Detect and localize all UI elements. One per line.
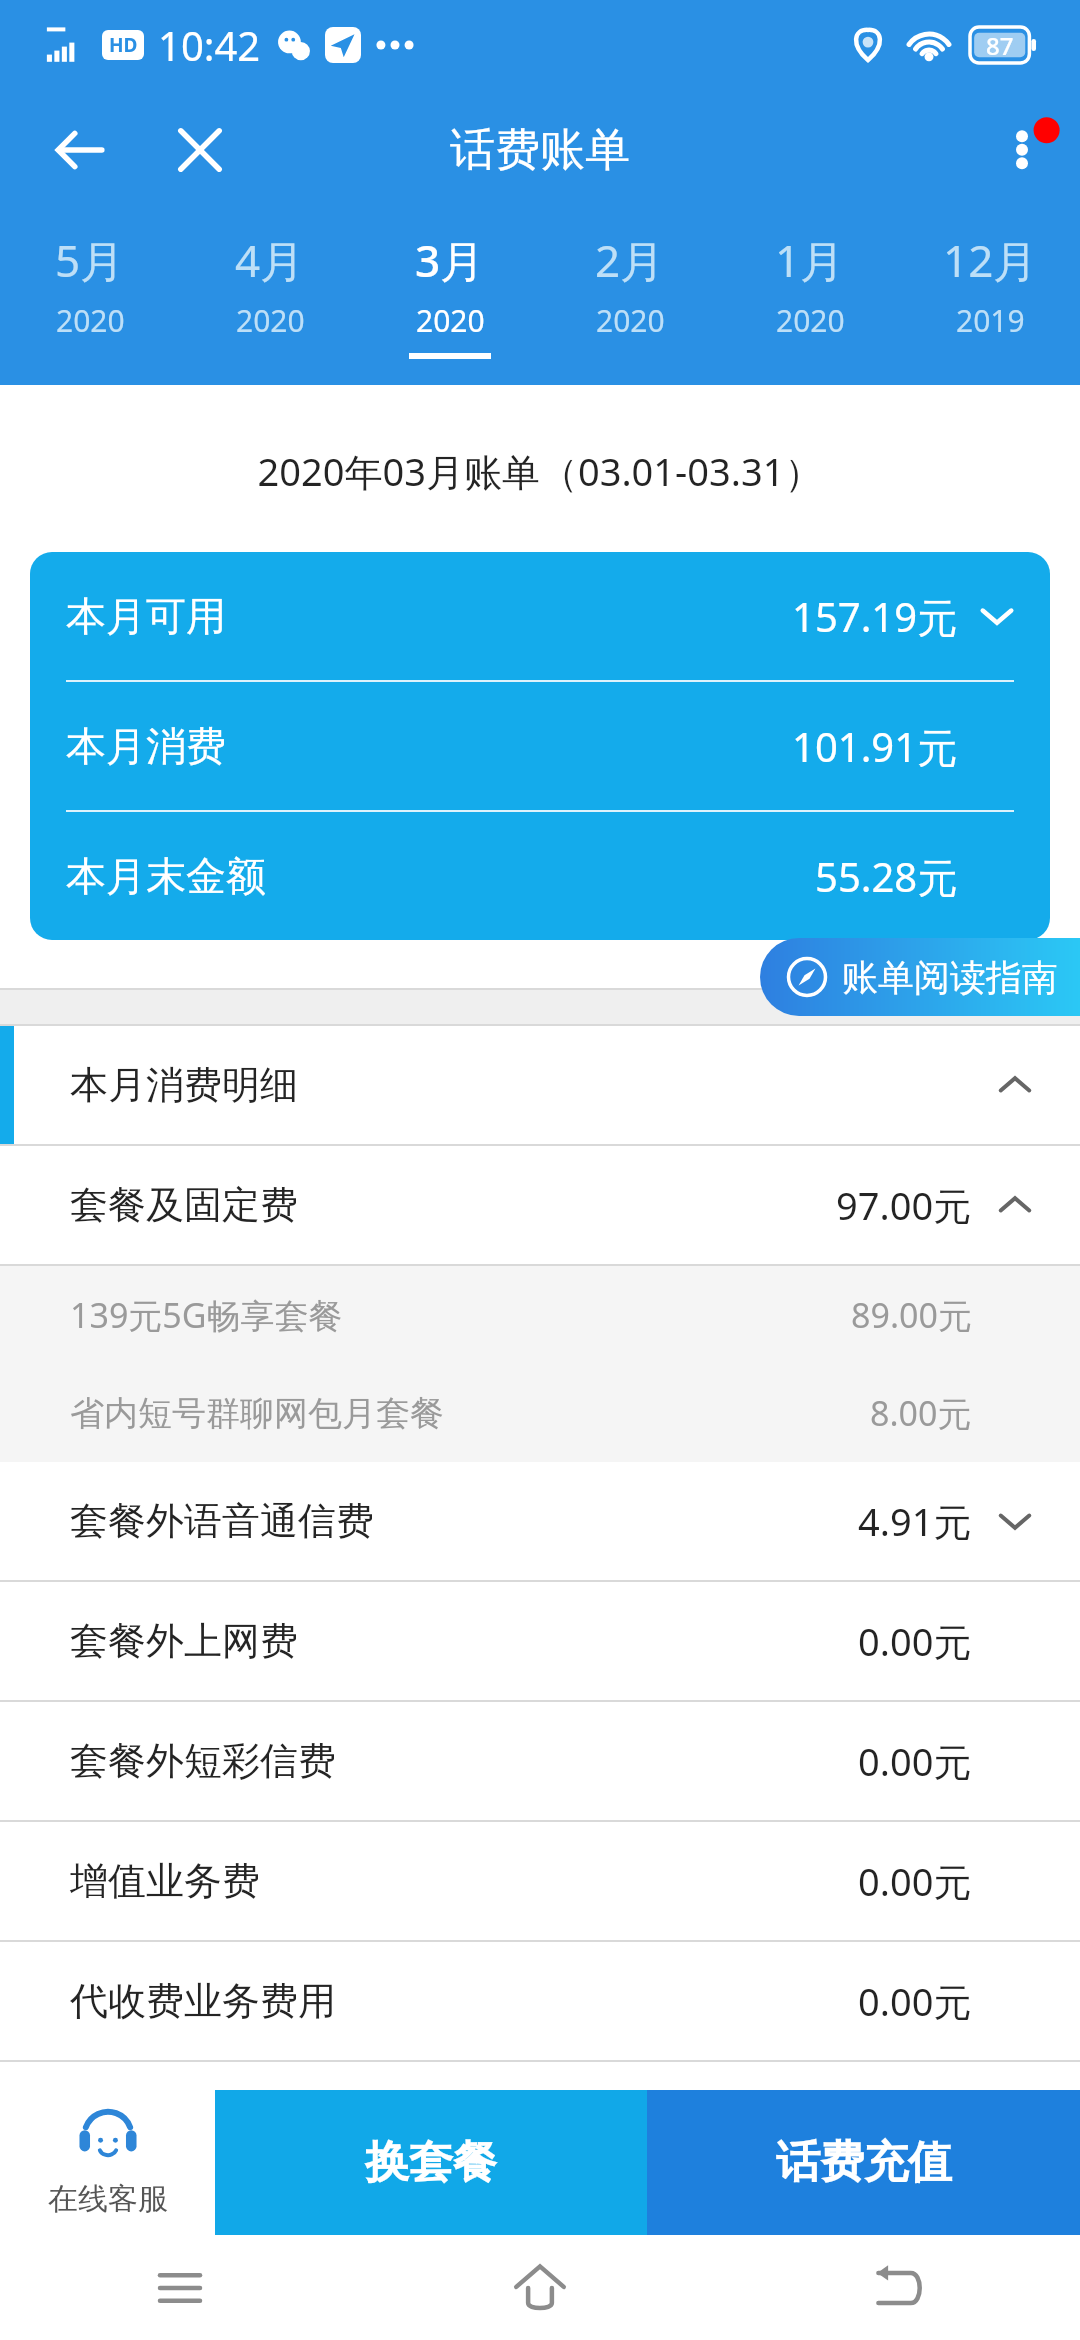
staticText: 本月消费明细 (70, 1061, 298, 1109)
button[interactable]: More options (970, 95, 1080, 205)
button[interactable]: Back (25, 95, 135, 205)
staticText: 97.00元 (836, 1179, 972, 1231)
button[interactable]: 本月末金额 (66, 812, 1014, 940)
staticText: 1月 (775, 230, 845, 290)
staticText: 2020 (596, 300, 665, 341)
staticText: 话费账单 (450, 122, 630, 179)
staticText: 2019 (956, 300, 1025, 341)
staticText: 话费充值 (776, 2135, 952, 2190)
staticText: 本月可用 (66, 591, 226, 641)
button[interactable]: Recent apps (0, 2235, 360, 2340)
button[interactable]: 省内短号群聊网包月套餐 (70, 1364, 972, 1462)
staticText: 2月 (595, 230, 665, 290)
staticText: 2020 (776, 300, 845, 341)
staticText: 4.91元 (858, 1495, 972, 1547)
button[interactable]: 代收费业务费用 (0, 1942, 1080, 2060)
button[interactable]: 账单阅读指南 (760, 938, 1080, 1016)
button[interactable]: 套餐外上网费 (0, 1582, 1080, 1700)
staticText: 3月 (415, 230, 485, 290)
button[interactable]: Home (360, 2235, 720, 2340)
button[interactable]: 2月 (540, 230, 720, 380)
staticText: 本月末金额 (66, 851, 266, 901)
button[interactable]: 12月 (900, 230, 1080, 380)
button[interactable]: 套餐外语音通信费 (0, 1462, 1080, 1580)
staticText: 0.00元 (858, 1855, 972, 1907)
staticText: 套餐外语音通信费 (70, 1497, 374, 1545)
staticText: 10:42 (158, 18, 261, 72)
button[interactable]: 4月 (180, 230, 360, 380)
button[interactable]: 套餐外短彩信费 (0, 1702, 1080, 1820)
button[interactable]: 换套餐 (215, 2090, 647, 2235)
staticText: 0.00元 (858, 1975, 972, 2027)
staticText: 账单阅读指南 (842, 955, 1058, 1000)
staticText: 4月 (235, 230, 305, 290)
button[interactable]: 本月消费 (66, 682, 1014, 810)
button[interactable]: Back (720, 2235, 1080, 2340)
button[interactable]: 增值业务费 (0, 1822, 1080, 1940)
staticText: HD (109, 32, 138, 58)
staticText: 55.28元 (815, 849, 958, 904)
button[interactable]: 139元5G畅享套餐 (70, 1266, 972, 1364)
button[interactable]: 话费充值 (647, 2090, 1080, 2235)
button[interactable]: 在线客服 (0, 2090, 215, 2235)
staticText: 8.00元 (870, 1390, 972, 1436)
button[interactable]: 本月可用 (66, 552, 1014, 680)
staticText: 157.19元 (792, 589, 958, 644)
staticText: 87 (986, 29, 1014, 62)
staticText: 101.91元 (792, 719, 958, 774)
staticText: 套餐外上网费 (70, 1617, 298, 1665)
staticText: 增值业务费 (70, 1857, 260, 1905)
staticText: 5月 (55, 230, 125, 290)
staticText: 代收费业务费用 (70, 1977, 336, 2025)
staticText: 省内短号群聊网包月套餐 (70, 1392, 444, 1435)
staticText: 套餐外短彩信费 (70, 1737, 336, 1785)
staticText: 本月消费 (66, 721, 226, 771)
staticText: 在线客服 (48, 2180, 168, 2218)
button[interactable]: 5月 (0, 230, 180, 380)
staticText: 换套餐 (365, 2135, 497, 2190)
button[interactable]: 本月消费明细 (0, 1026, 1080, 1144)
staticText: 套餐及固定费 (70, 1181, 298, 1229)
staticText: 139元5G畅享套餐 (70, 1292, 343, 1338)
staticText: 0.00元 (858, 1615, 972, 1667)
button[interactable]: Close (145, 95, 255, 205)
staticText: 0.00元 (858, 1735, 972, 1787)
button[interactable]: 3月 (360, 230, 540, 380)
staticText: 2020 (236, 300, 305, 341)
staticText: 2020年03月账单（03.01-03.31） (0, 445, 1080, 497)
button[interactable]: 套餐及固定费 (0, 1146, 1080, 1264)
button[interactable]: 1月 (720, 230, 900, 380)
staticText: 2020 (416, 300, 485, 341)
staticText: 89.00元 (851, 1292, 972, 1338)
staticText: 12月 (943, 230, 1038, 290)
staticText: 2020 (56, 300, 125, 341)
